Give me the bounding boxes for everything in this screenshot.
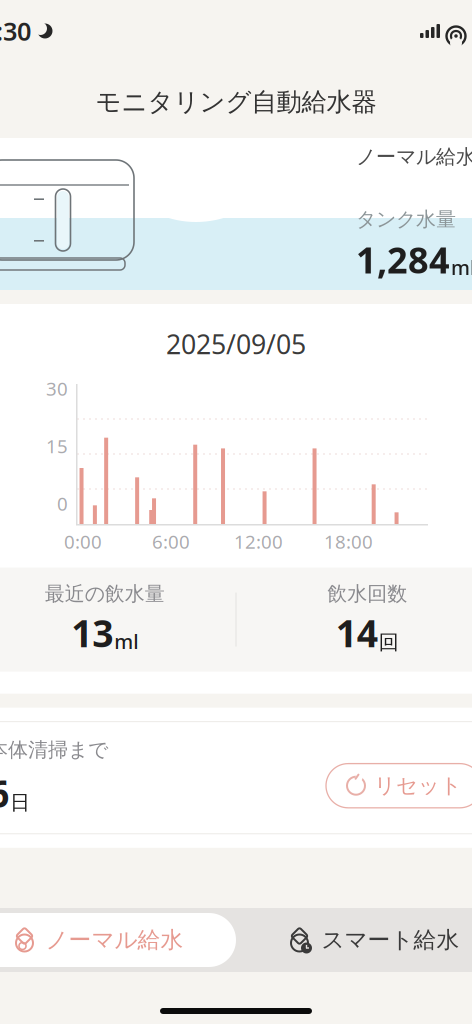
staticText: リセット (374, 773, 462, 799)
staticText: 15:30 (0, 14, 31, 48)
staticText: 13 (71, 608, 113, 658)
staticText: 6:00 (152, 529, 190, 554)
staticText: 回 (379, 630, 399, 655)
button[interactable]: スマート給水 (236, 913, 472, 967)
staticText: 2025/09/05 (166, 326, 306, 362)
staticText: 日 (10, 790, 30, 815)
staticText: 18:00 (324, 529, 373, 554)
staticText: ノーマル給水 (45, 926, 183, 954)
staticText: スマート給水 (321, 926, 459, 954)
button[interactable]: リセット (326, 764, 472, 808)
staticText: 15 (46, 434, 68, 458)
staticText: 本体清掃まで (0, 738, 108, 762)
staticText: ml (451, 254, 472, 280)
staticText: ml (114, 628, 138, 655)
staticText: 0 (57, 491, 68, 516)
staticText: 飲水回数 (327, 581, 407, 606)
staticText: モニタリング自動給水器 (95, 86, 376, 117)
staticText: 6 (0, 768, 9, 818)
staticText: 0:00 (64, 529, 102, 554)
staticText: ノーマル給水 (356, 144, 472, 169)
staticText: タンク水量 (356, 207, 456, 232)
staticText: 最近の飲水量 (45, 581, 165, 606)
staticText: 14 (336, 608, 378, 658)
staticText: 12:00 (234, 529, 283, 554)
button[interactable]: ノーマル給水 (0, 913, 236, 967)
staticText: 1,284 (356, 236, 450, 283)
staticText: 30 (46, 376, 68, 401)
